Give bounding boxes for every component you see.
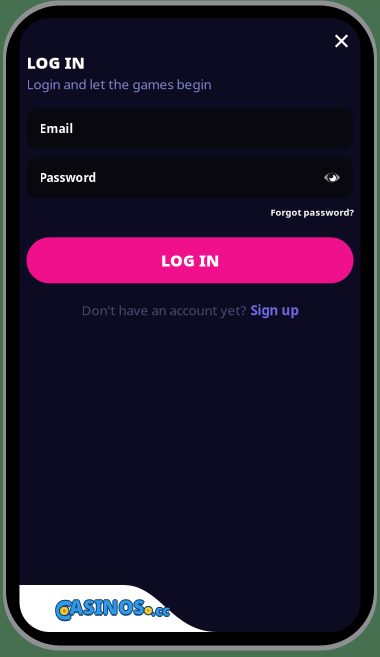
staticText: ASINOS: [69, 593, 144, 618]
button[interactable]: Close: [329, 29, 353, 53]
staticText: .cc: [153, 602, 171, 619]
staticText: Password: [39, 169, 96, 185]
staticText: C: [55, 591, 72, 626]
staticText: ASINOS: [69, 596, 144, 621]
staticText: .cc: [150, 602, 168, 619]
staticText: Email: [39, 120, 73, 136]
staticText: ASINOS: [69, 595, 144, 619]
button[interactable]: LOG IN: [26, 237, 353, 283]
staticText: C: [56, 592, 73, 627]
staticText: C: [54, 592, 71, 627]
button[interactable]: Forgot password?: [270, 206, 353, 218]
staticText: C: [55, 593, 72, 628]
staticText: Forgot password?: [270, 206, 353, 218]
staticText: LOG IN: [161, 250, 219, 271]
staticText: ASINOS: [68, 595, 143, 619]
button[interactable]: Sign up: [250, 301, 298, 319]
staticText: Sign up: [250, 301, 298, 319]
staticText: ASINOS: [71, 595, 146, 619]
staticText: C: [55, 592, 72, 627]
staticText: Login and let the games begin: [26, 75, 211, 93]
staticText: .cc: [151, 601, 169, 618]
staticText: .cc: [151, 602, 169, 619]
staticText: LOG IN: [26, 52, 84, 73]
staticText: Don't have an account yet?: [81, 301, 246, 319]
staticText: .cc: [151, 603, 169, 621]
